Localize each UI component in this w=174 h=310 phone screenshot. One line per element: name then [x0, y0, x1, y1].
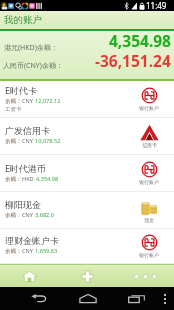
- staticText: 柳阳现金: [5, 199, 41, 210]
- staticText: 人民币(CNY)余额：: [3, 61, 63, 71]
- staticText: 11:49: [146, 0, 167, 11]
- staticText: 现金: [144, 217, 154, 223]
- staticText: 银行账户: [139, 252, 159, 258]
- button[interactable]: Home: [0, 265, 58, 287]
- staticText: 理财金账户卡: [5, 235, 59, 246]
- staticText: CNY: [22, 97, 35, 105]
- staticText: CNY: [22, 247, 35, 255]
- button[interactable]: E时代港币: [0, 155, 174, 192]
- button[interactable]: 柳阳现金: [0, 192, 174, 229]
- button[interactable]: Menu: [159, 287, 171, 310]
- staticText: 1,659.63: [35, 247, 58, 255]
- staticText: 工资卡: [5, 106, 22, 113]
- staticText: 10,078.52: [35, 137, 61, 145]
- button[interactable]: Back: [29, 287, 49, 310]
- button[interactable]: E时代卡: [0, 81, 174, 118]
- staticText: 我的账户: [4, 14, 42, 26]
- staticText: 广发信用卡: [5, 125, 50, 136]
- staticText: 银行账户: [139, 179, 159, 185]
- staticText: 12,072.12: [35, 97, 61, 105]
- button[interactable]: Recent apps: [127, 287, 146, 310]
- staticText: 余额：: [5, 176, 22, 183]
- staticText: 银行账户: [139, 105, 159, 111]
- staticText: 余额：: [5, 138, 22, 145]
- staticText: -36,151.24: [95, 50, 171, 71]
- staticText: 余额：: [5, 212, 22, 219]
- button[interactable]: Home: [78, 287, 97, 310]
- staticText: 余额：: [5, 248, 22, 255]
- staticText: 港元(HKD)余额：: [4, 43, 58, 53]
- staticText: 4,354.98: [109, 30, 171, 51]
- staticText: 3,682.0: [35, 211, 54, 219]
- button[interactable]: 广发信用卡: [0, 118, 174, 155]
- staticText: CNY: [22, 137, 35, 145]
- staticText: CNY: [22, 211, 35, 219]
- button[interactable]: 理财金账户卡: [0, 229, 174, 264]
- staticText: 4,354.98: [36, 175, 59, 183]
- staticText: 信用卡: [142, 142, 157, 148]
- staticText: E时代卡: [5, 84, 38, 96]
- button[interactable]: More options: [116, 265, 174, 287]
- staticText: E时代港币: [5, 162, 47, 174]
- button[interactable]: Add account: [58, 265, 116, 287]
- staticText: 余额：: [5, 98, 22, 105]
- staticText: HKD: [22, 175, 36, 183]
